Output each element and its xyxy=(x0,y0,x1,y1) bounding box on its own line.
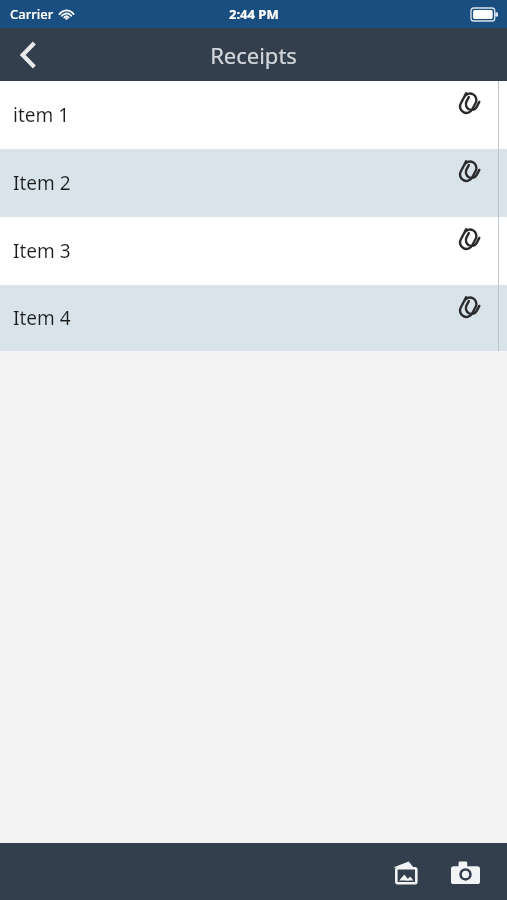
button[interactable]: Back xyxy=(0,28,56,81)
button[interactable]: Item 3 xyxy=(0,217,507,285)
button[interactable]: Item 4 xyxy=(0,285,507,351)
button[interactable]: Attachment xyxy=(450,223,484,257)
staticText: 2:44 PM xyxy=(229,5,279,23)
button[interactable]: Attachment xyxy=(450,155,484,189)
button[interactable]: Choose photo from library xyxy=(381,848,429,896)
staticText: Item 4 xyxy=(13,305,71,331)
button[interactable]: Attachment xyxy=(450,291,484,325)
button[interactable]: Attachment xyxy=(450,87,484,121)
staticText: Carrier xyxy=(10,5,54,23)
button[interactable]: item 1 xyxy=(0,81,507,149)
staticText: Item 2 xyxy=(13,170,71,196)
staticText: Item 3 xyxy=(13,238,71,264)
staticText: Receipts xyxy=(210,40,297,70)
staticText: item 1 xyxy=(13,102,70,128)
button[interactable]: Item 2 xyxy=(0,149,507,217)
button[interactable]: Take photo with camera xyxy=(441,848,489,896)
